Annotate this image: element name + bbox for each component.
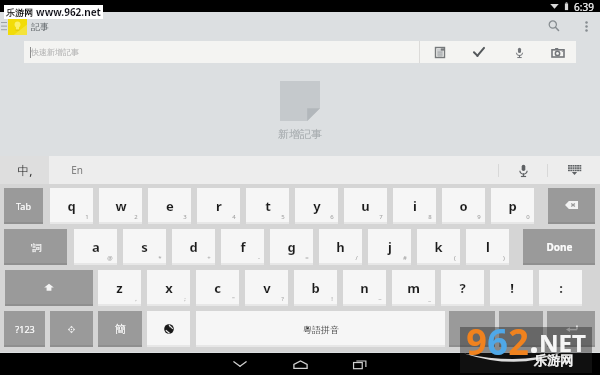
button[interactable]: 粵語拼音 xyxy=(196,311,445,347)
button[interactable]: s xyxy=(123,229,166,265)
button[interactable]: g xyxy=(270,229,313,265)
button[interactable]: d xyxy=(172,229,215,265)
button[interactable]: Save note xyxy=(459,41,499,63)
staticText: 1 xyxy=(85,213,89,221)
button[interactable]: i xyxy=(393,188,436,224)
button[interactable]: ? xyxy=(441,270,484,306)
staticText: h xyxy=(336,238,345,256)
button[interactable]: 中, xyxy=(0,156,49,184)
staticText: 乐游网 xyxy=(534,352,573,368)
button[interactable]: w xyxy=(99,188,142,224)
button[interactable]: Recent apps xyxy=(330,353,390,375)
button[interactable]: Add note xyxy=(240,81,360,121)
button[interactable]: h xyxy=(319,229,362,265)
button[interactable]: u xyxy=(344,188,387,224)
button[interactable]: y xyxy=(295,188,338,224)
staticText: y xyxy=(313,197,321,215)
staticText: 6:39 xyxy=(574,0,594,12)
button[interactable]: ， xyxy=(449,311,495,347)
staticText: l xyxy=(486,238,490,256)
button[interactable]: ?123 xyxy=(4,311,45,347)
button[interactable]: Key xyxy=(548,188,595,224)
button[interactable]: e xyxy=(148,188,191,224)
staticText: p xyxy=(508,197,517,215)
staticText: 簡 xyxy=(115,322,126,336)
button[interactable]: a xyxy=(74,229,117,265)
staticText: _ xyxy=(428,295,431,303)
button[interactable]: n xyxy=(343,270,386,306)
button[interactable]: c xyxy=(196,270,239,306)
staticText: Done xyxy=(546,240,573,254)
staticText: x xyxy=(165,279,173,297)
staticText: + xyxy=(207,254,211,262)
button[interactable]: k xyxy=(417,229,460,265)
button[interactable]: 簡 xyxy=(98,311,142,347)
button[interactable]: r xyxy=(197,188,240,224)
staticText: 6 xyxy=(330,213,334,221)
button[interactable]: ! xyxy=(490,270,533,306)
button[interactable]: More options xyxy=(572,12,600,40)
button[interactable]: Key xyxy=(50,311,93,347)
button[interactable]: 快速新增記事 xyxy=(24,41,419,63)
staticText: b xyxy=(311,279,320,297)
staticText: * xyxy=(158,254,162,262)
button[interactable]: Home xyxy=(270,353,330,375)
staticText: 新增記事 xyxy=(240,127,360,141)
staticText: ! xyxy=(331,295,333,303)
button[interactable]: j xyxy=(368,229,411,265)
staticText: Tab xyxy=(16,200,31,212)
button[interactable]: : xyxy=(539,270,582,306)
staticText: e xyxy=(166,197,174,215)
staticText: NET xyxy=(539,326,586,359)
staticText: ?123 xyxy=(15,323,35,335)
staticText: d xyxy=(189,238,198,256)
staticText: = xyxy=(305,254,309,262)
staticText: 6 xyxy=(487,317,508,363)
staticText: 8 xyxy=(428,213,432,221)
staticText: " xyxy=(232,295,235,303)
button[interactable]: q xyxy=(50,188,93,224)
button[interactable]: v xyxy=(245,270,288,306)
staticText: 4 xyxy=(232,213,236,221)
staticText: k xyxy=(434,238,443,256)
button[interactable]: Key xyxy=(147,311,190,347)
button[interactable]: Search xyxy=(536,12,572,40)
staticText: j xyxy=(388,238,392,256)
button[interactable]: b xyxy=(294,270,337,306)
staticText: www.962.net xyxy=(36,5,101,19)
button[interactable]: New list note xyxy=(420,41,459,63)
staticText: 5 xyxy=(281,213,285,221)
button[interactable]: l xyxy=(466,229,509,265)
staticText: , xyxy=(135,295,137,303)
button[interactable]: Voice input xyxy=(499,156,547,184)
button[interactable]: p xyxy=(491,188,534,224)
button[interactable]: f xyxy=(221,229,264,265)
button[interactable]: Hide keyboard xyxy=(548,156,600,184)
staticText: 乐游网 xyxy=(6,7,33,18)
staticText: ( xyxy=(454,254,456,262)
button[interactable]: Hide keyboard xyxy=(210,353,270,375)
button[interactable]: z xyxy=(98,270,141,306)
staticText: En xyxy=(71,163,83,177)
button[interactable]: Done xyxy=(523,229,595,265)
staticText: 粵語拼音 xyxy=(303,324,339,335)
staticText: z xyxy=(116,279,123,297)
button[interactable]: '詞 xyxy=(4,229,67,265)
staticText: n xyxy=(360,279,369,297)
button[interactable]: Key xyxy=(5,270,93,306)
button[interactable]: o xyxy=(442,188,485,224)
staticText: 快速新增記事 xyxy=(31,47,79,57)
button[interactable]: m xyxy=(392,270,435,306)
staticText: w xyxy=(115,197,127,215)
button[interactable]: t xyxy=(246,188,289,224)
button[interactable]: Tab xyxy=(4,188,43,224)
button[interactable]: Voice note xyxy=(499,41,539,63)
staticText: ; xyxy=(184,295,186,303)
button[interactable]: Key xyxy=(547,311,595,347)
button[interactable]: Photo note xyxy=(539,41,576,63)
button[interactable]: En xyxy=(49,156,498,184)
button[interactable]: Open navigation drawer xyxy=(0,12,7,40)
staticText: s xyxy=(141,238,148,256)
button[interactable]: 。 xyxy=(499,311,543,347)
button[interactable]: x xyxy=(147,270,190,306)
